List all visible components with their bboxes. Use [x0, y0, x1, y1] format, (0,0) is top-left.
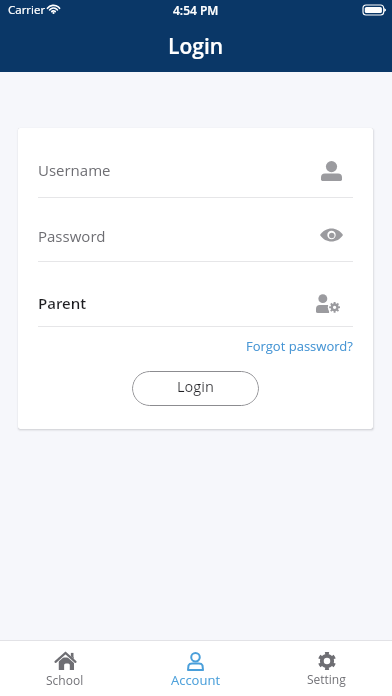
button[interactable]: Parent	[18, 261, 373, 326]
button[interactable]: Forgot password?	[234, 333, 373, 359]
staticText: Login	[177, 377, 214, 397]
staticText: Parent	[38, 293, 87, 313]
button[interactable]: Account	[130, 641, 261, 689]
button[interactable]: Password	[18, 197, 373, 261]
staticText: 4:54 PM	[173, 2, 219, 18]
button[interactable]: Username	[18, 128, 373, 197]
staticText: Setting	[307, 671, 346, 687]
staticText: Login	[168, 32, 224, 61]
staticText: Password	[38, 226, 106, 246]
staticText: Account	[171, 671, 221, 689]
staticText: Carrier	[8, 2, 46, 18]
button[interactable]: Setting	[261, 641, 392, 687]
staticText: School	[46, 672, 84, 688]
button[interactable]: School	[0, 641, 130, 688]
staticText: Username	[38, 160, 111, 180]
button[interactable]: Login	[132, 371, 259, 406]
